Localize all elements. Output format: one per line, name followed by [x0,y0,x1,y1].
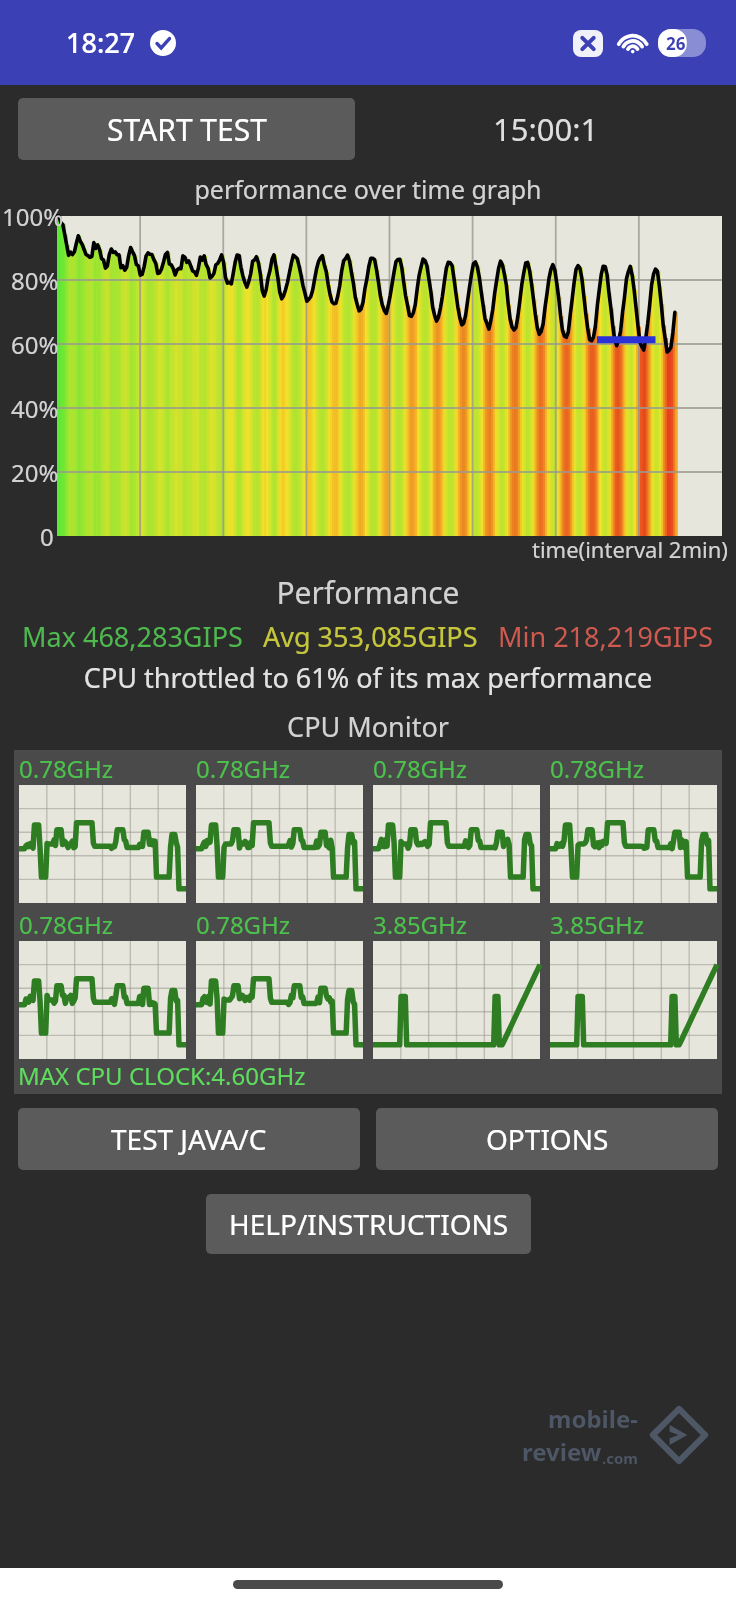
staticText: mobile- [548,1402,638,1435]
staticText: Min 218,219GIPS [498,618,714,655]
other: Battery 26 percent [658,29,706,57]
staticText: 0.78GHz [196,908,291,941]
staticText: performance over time graph [0,172,736,206]
staticText: 3.85GHz [373,908,468,941]
staticText: OPTIONS [486,1120,609,1158]
staticText: TEST JAVA/C [111,1120,267,1158]
staticText: 80% [11,264,59,297]
staticText: 0.78GHz [373,752,468,785]
other: Wi-Fi [614,30,650,57]
staticText: 26 [666,32,686,55]
staticText: CPU Monitor [0,708,736,745]
staticText: 0.78GHz [19,908,114,941]
staticText: 100% [2,200,64,233]
staticText: .com [602,1448,638,1468]
staticText: HELP/INSTRUCTIONS [229,1205,509,1243]
button[interactable]: OPTIONS [376,1108,718,1170]
button[interactable]: START TEST [18,98,355,160]
staticText: 0.78GHz [196,752,291,785]
staticText: MAX CPU CLOCK:4.60GHz [18,1059,306,1092]
staticText: 0.78GHz [550,752,645,785]
staticText: Avg 353,085GIPS [263,618,478,655]
other: Verified [150,30,176,56]
button[interactable]: HELP/INSTRUCTIONS [206,1194,531,1254]
staticText: time(interval 2min) [532,534,728,564]
staticText: Performance [0,572,736,613]
staticText: START TEST [107,109,267,150]
staticText: 60% [11,328,59,361]
staticText: 15:00:1 [493,108,599,150]
staticText: 20% [11,456,59,489]
button[interactable]: TEST JAVA/C [18,1108,360,1170]
staticText: 40% [11,392,59,425]
staticText: 18:27 [66,24,136,61]
staticText: review [522,1435,602,1468]
other: No SIM [573,30,603,57]
staticText: 3.85GHz [550,908,645,941]
staticText: 0.78GHz [19,752,114,785]
staticText: 0 [40,520,54,553]
staticText: CPU throttled to 61% of its max performa… [0,659,736,696]
staticText: Max 468,283GIPS [22,618,243,655]
